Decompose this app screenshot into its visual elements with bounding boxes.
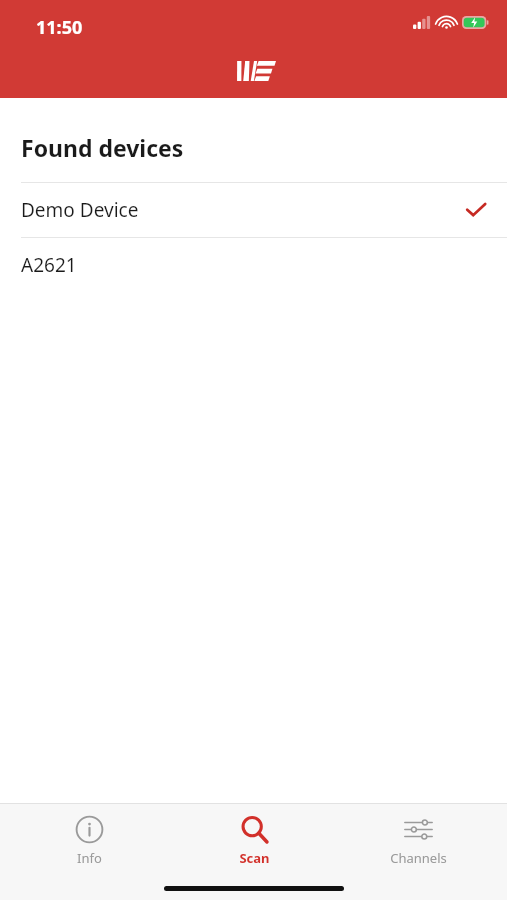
staticText: Info: [77, 849, 102, 867]
staticText: Scan: [239, 849, 270, 867]
staticText: Found devices: [21, 132, 184, 163]
button[interactable]: Channels: [343, 804, 493, 873]
staticText: Demo Device: [21, 197, 466, 223]
button[interactable]: Info: [14, 804, 164, 873]
button[interactable]: Scan: [179, 804, 329, 873]
staticText: A2621: [21, 252, 486, 278]
button[interactable]: Demo Device: [0, 183, 507, 237]
staticText: 11:50: [36, 15, 83, 40]
staticText: Channels: [390, 849, 447, 867]
button[interactable]: A2621: [0, 238, 507, 292]
